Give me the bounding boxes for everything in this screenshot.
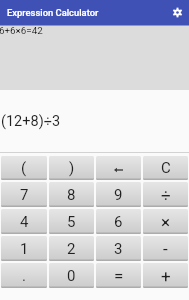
button[interactable]: Settings bbox=[169, 4, 185, 20]
button[interactable]: 7 bbox=[1, 182, 47, 207]
button[interactable]: ÷ bbox=[143, 182, 188, 207]
button[interactable]: 5 bbox=[49, 209, 94, 234]
staticText: 5 bbox=[67, 213, 76, 231]
staticText: ÷ bbox=[161, 185, 171, 205]
staticText: × bbox=[161, 212, 171, 232]
button[interactable]: × bbox=[143, 209, 188, 234]
staticText: (12+8)÷3 bbox=[1, 113, 61, 130]
staticText: ) bbox=[69, 159, 75, 177]
staticText: 1 bbox=[20, 240, 29, 258]
button[interactable]: . bbox=[1, 263, 47, 288]
staticText: 2 bbox=[67, 240, 76, 258]
staticText: 6 bbox=[114, 213, 123, 231]
button[interactable]: ( bbox=[1, 156, 47, 180]
staticText: + bbox=[161, 266, 171, 286]
button[interactable]: Backspace bbox=[96, 156, 141, 180]
staticText: 4 bbox=[20, 213, 29, 231]
staticText: 9 bbox=[114, 186, 123, 204]
staticText: C bbox=[161, 159, 171, 177]
button[interactable]: 3 bbox=[96, 236, 141, 261]
button[interactable]: - bbox=[143, 236, 188, 261]
staticText: = bbox=[114, 266, 124, 286]
button[interactable]: 0 bbox=[49, 263, 94, 288]
button[interactable]: 9 bbox=[96, 182, 141, 207]
button[interactable]: C bbox=[143, 156, 188, 180]
button[interactable]: 4 bbox=[1, 209, 47, 234]
staticText: - bbox=[163, 239, 168, 259]
button[interactable]: 1 bbox=[1, 236, 47, 261]
button[interactable]: 8 bbox=[49, 182, 94, 207]
staticText: 3 bbox=[114, 240, 123, 258]
button[interactable]: 6 bbox=[96, 209, 141, 234]
staticText: 7 bbox=[20, 186, 29, 204]
button[interactable]: = bbox=[96, 263, 141, 288]
staticText: 0 bbox=[67, 267, 76, 285]
staticText: 8 bbox=[67, 186, 76, 204]
staticText: Expression Calculator bbox=[7, 7, 99, 18]
button[interactable]: + bbox=[143, 263, 188, 288]
staticText: ( bbox=[21, 159, 27, 177]
staticText: 6+6×6=42 bbox=[0, 25, 43, 36]
button[interactable]: ) bbox=[49, 156, 94, 180]
staticText: . bbox=[22, 267, 26, 285]
button[interactable]: 2 bbox=[49, 236, 94, 261]
